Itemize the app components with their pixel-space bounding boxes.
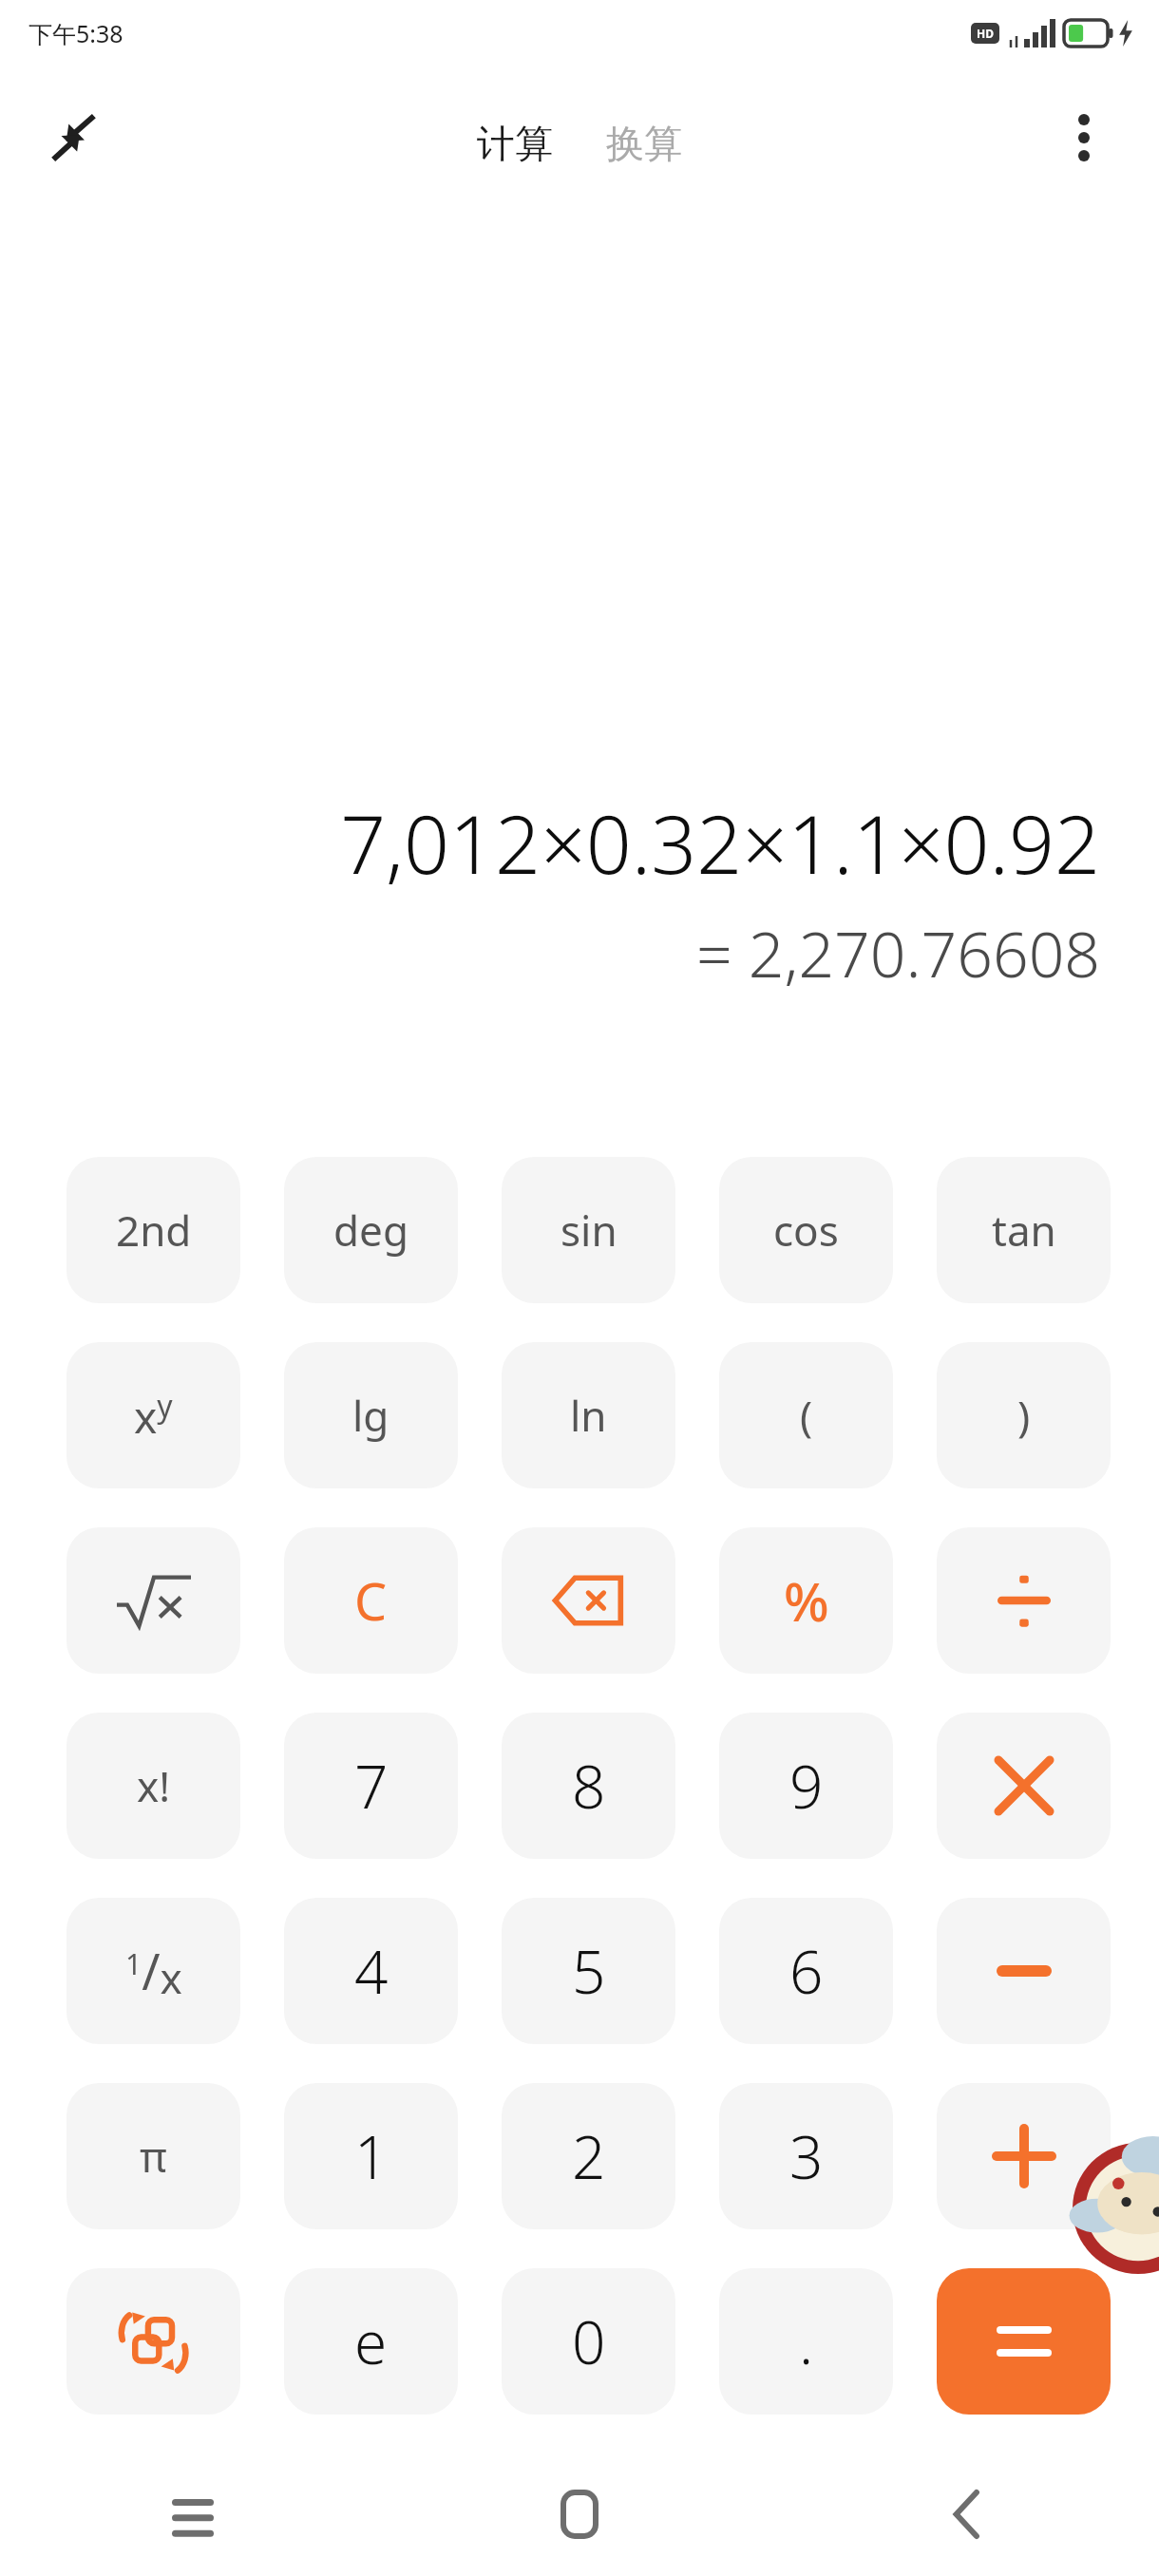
button[interactable]: e (284, 2268, 458, 2415)
button[interactable]: . (719, 2268, 893, 2415)
staticText: = 2,270.76608 (696, 910, 1100, 995)
button[interactable]: More options (1043, 97, 1125, 179)
staticText: ( (800, 1387, 813, 1444)
button[interactable]: 8 (502, 1713, 675, 1859)
button[interactable]: Recents (0, 2462, 386, 2567)
staticText: tan (992, 1202, 1056, 1259)
button[interactable]: 6 (719, 1898, 893, 2044)
button[interactable]: Collapse (32, 97, 114, 179)
button[interactable]: 换算 (595, 114, 693, 173)
staticText: 2 (572, 2116, 606, 2196)
staticText: 3 (789, 2116, 824, 2196)
button[interactable]: Back (772, 2462, 1159, 2567)
staticText: 0 (572, 2301, 606, 2381)
staticText: lg (352, 1387, 389, 1444)
button[interactable]: ) (937, 1342, 1111, 1488)
button[interactable]: 计算 (465, 114, 564, 173)
button[interactable]: Reciprocal (66, 1898, 240, 2044)
staticText: 1/x (125, 1937, 182, 2006)
button[interactable]: Backspace (502, 1527, 675, 1674)
staticText: π (140, 2128, 167, 2185)
button[interactable]: ( (719, 1342, 893, 1488)
staticText: 6 (789, 1931, 824, 2011)
staticText: 计算 (477, 120, 553, 167)
button[interactable]: 7 (284, 1713, 458, 1859)
button[interactable] (937, 1713, 1111, 1859)
staticText: % (784, 1564, 829, 1637)
staticText: xy (134, 1385, 173, 1446)
button[interactable] (937, 2083, 1111, 2229)
button[interactable]: sin (502, 1157, 675, 1303)
staticText: 下午5:38 (28, 17, 123, 49)
staticText: C (354, 1565, 388, 1636)
staticText: sin (560, 1202, 617, 1259)
staticText: 4 (354, 1931, 389, 2011)
staticText: . (799, 2301, 814, 2381)
button[interactable] (937, 1898, 1111, 2044)
button[interactable]: tan (937, 1157, 1111, 1303)
staticText: 5 (572, 1931, 606, 2011)
button[interactable]: π (66, 2083, 240, 2229)
button[interactable]: Home (386, 2462, 772, 2567)
button[interactable]: 4 (284, 1898, 458, 2044)
button[interactable]: C (284, 1527, 458, 1674)
staticText: x! (137, 1757, 171, 1814)
button[interactable]: 9 (719, 1713, 893, 1859)
button[interactable]: 3 (719, 2083, 893, 2229)
button[interactable]: % (719, 1527, 893, 1674)
button[interactable]: 1 (284, 2083, 458, 2229)
staticText: e (354, 2301, 388, 2381)
button[interactable]: ln (502, 1342, 675, 1488)
staticText: 7 (354, 1746, 389, 1826)
staticText: ln (570, 1387, 607, 1444)
staticText: HD (977, 26, 994, 41)
staticText: 2nd (116, 1202, 192, 1259)
button[interactable]: 2 (502, 2083, 675, 2229)
staticText: 9 (789, 1746, 824, 1826)
button[interactable]: Square root (66, 1527, 240, 1674)
staticText: deg (333, 1202, 408, 1259)
button[interactable]: lg (284, 1342, 458, 1488)
staticText: ) (1017, 1387, 1031, 1444)
button[interactable]: 5 (502, 1898, 675, 2044)
button[interactable]: cos (719, 1157, 893, 1303)
button[interactable]: 2nd (66, 1157, 240, 1303)
staticText: cos (773, 1202, 839, 1259)
button[interactable]: 0 (502, 2268, 675, 2415)
staticText: 1 (354, 2116, 389, 2196)
button[interactable] (937, 1527, 1111, 1674)
button[interactable]: Swap units (66, 2268, 240, 2415)
button[interactable]: deg (284, 1157, 458, 1303)
staticText: 7,012×0.32×1.1×0.92 (340, 788, 1100, 897)
button[interactable]: x! (66, 1713, 240, 1859)
staticText: 换算 (606, 120, 682, 167)
button[interactable]: Power (66, 1342, 240, 1488)
button[interactable] (937, 2268, 1111, 2415)
staticText: 8 (572, 1746, 606, 1826)
